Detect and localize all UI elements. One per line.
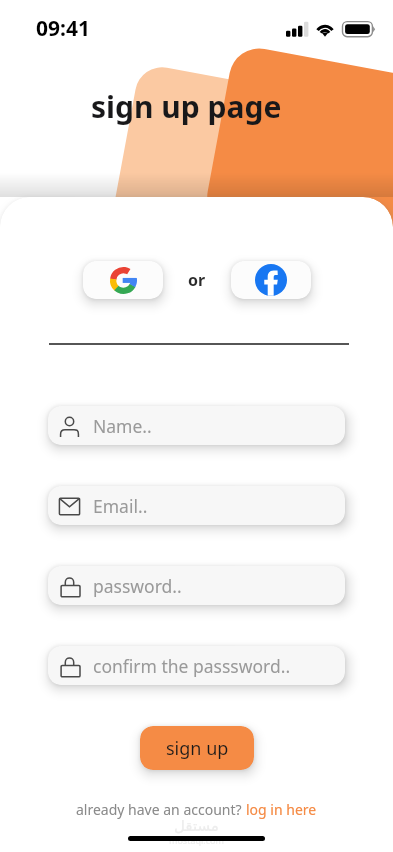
staticText: sign up page bbox=[91, 86, 282, 127]
staticText: already have an account? bbox=[76, 800, 246, 819]
staticText: password.. bbox=[93, 574, 182, 598]
button[interactable]: Email.. bbox=[48, 486, 345, 525]
staticText: mostaqi.com bbox=[169, 834, 224, 846]
button[interactable]: log in here bbox=[246, 800, 317, 819]
staticText: log in here bbox=[246, 800, 317, 819]
button[interactable]: password.. bbox=[48, 566, 345, 605]
staticText: or bbox=[188, 269, 206, 291]
staticText: 09:41 bbox=[36, 14, 90, 43]
button[interactable]: confirm the passsword.. bbox=[48, 646, 345, 685]
button[interactable]: Name.. bbox=[48, 406, 345, 445]
staticText: Name.. bbox=[93, 414, 152, 438]
staticText: confirm the passsword.. bbox=[93, 654, 291, 678]
staticText: مستقل bbox=[174, 817, 219, 834]
staticText: sign up bbox=[166, 736, 229, 761]
button[interactable]: Sign up with Facebook bbox=[231, 261, 311, 299]
staticText: Email.. bbox=[93, 494, 148, 518]
button[interactable]: sign up bbox=[140, 726, 254, 770]
button[interactable]: Sign up with Google bbox=[83, 261, 163, 299]
